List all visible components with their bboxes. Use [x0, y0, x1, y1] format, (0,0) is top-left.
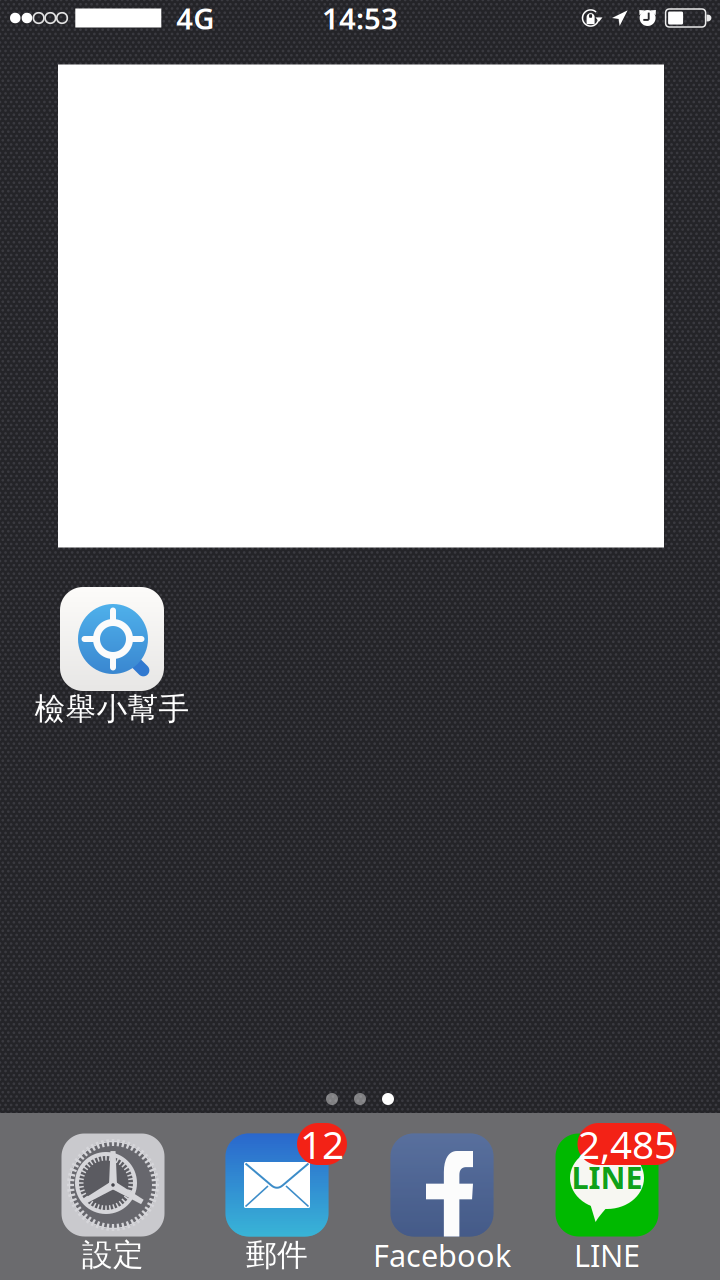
button[interactable]: 郵件: [195, 1133, 359, 1273]
staticText: 檢舉小幫手: [34, 690, 189, 728]
staticText: 4G: [176, 0, 214, 37]
staticText: 14:53: [322, 0, 398, 37]
button[interactable]: 檢舉小幫手: [30, 587, 194, 727]
staticText: 設定: [82, 1236, 144, 1274]
button[interactable]: LINE: [525, 1133, 689, 1273]
button[interactable]: Facebook: [360, 1133, 524, 1273]
button[interactable]: 設定: [31, 1133, 195, 1273]
staticText: 郵件: [246, 1236, 308, 1274]
staticText: 12: [300, 1118, 344, 1170]
staticText: LINE: [571, 1157, 642, 1197]
staticText: LINE: [574, 1235, 640, 1275]
staticText: 2,485: [578, 1118, 676, 1170]
staticText: Facebook: [373, 1235, 511, 1275]
